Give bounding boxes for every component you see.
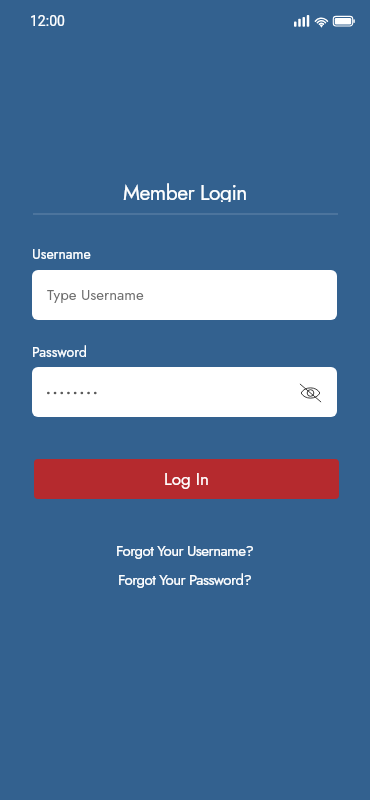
button[interactable]: Show password — [286, 367, 332, 417]
staticText: Type Username — [47, 284, 144, 306]
staticText: Password — [32, 342, 87, 362]
button[interactable]: Log In — [34, 459, 339, 499]
button[interactable]: Forgot Your Password? — [112, 567, 258, 593]
button[interactable]: Show password — [32, 367, 337, 417]
button[interactable]: Type Username — [32, 270, 337, 320]
staticText: 12:00 — [30, 13, 65, 29]
staticText: Log In — [164, 467, 209, 492]
staticText: Username — [32, 244, 91, 264]
button[interactable]: Forgot Your Username? — [110, 538, 260, 564]
staticText: Member Login — [123, 178, 247, 202]
